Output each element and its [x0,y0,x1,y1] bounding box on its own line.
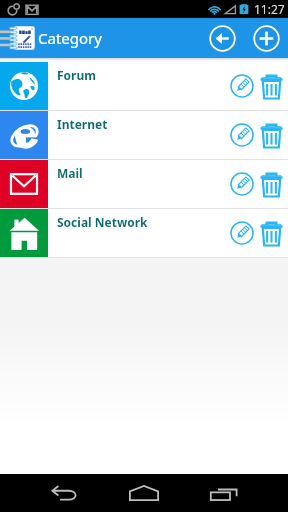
button[interactable]: Edit [227,169,257,199]
button[interactable]: Mail [0,160,288,208]
staticText: Social Network [57,214,148,230]
button[interactable]: Social Network [0,209,288,257]
button[interactable]: Delete [257,218,287,248]
button[interactable]: Back [204,18,240,58]
staticText: Mail [57,165,83,181]
staticText: Category [38,28,102,48]
button[interactable]: Edit [227,71,257,101]
button[interactable]: Recents [184,474,264,512]
button[interactable]: Edit [227,120,257,150]
button[interactable]: Home [104,474,184,512]
staticText: 11:27 [254,1,285,17]
staticText: Internet [57,116,108,132]
button[interactable]: Edit [227,218,257,248]
button[interactable]: Forum [0,62,288,110]
button[interactable]: Delete [257,71,287,101]
staticText: Forum [57,67,96,83]
button[interactable]: Add [248,18,284,58]
button[interactable]: Delete [257,120,287,150]
button[interactable]: Delete [257,169,287,199]
button[interactable]: Back [24,474,104,512]
button[interactable]: Internet [0,111,288,159]
